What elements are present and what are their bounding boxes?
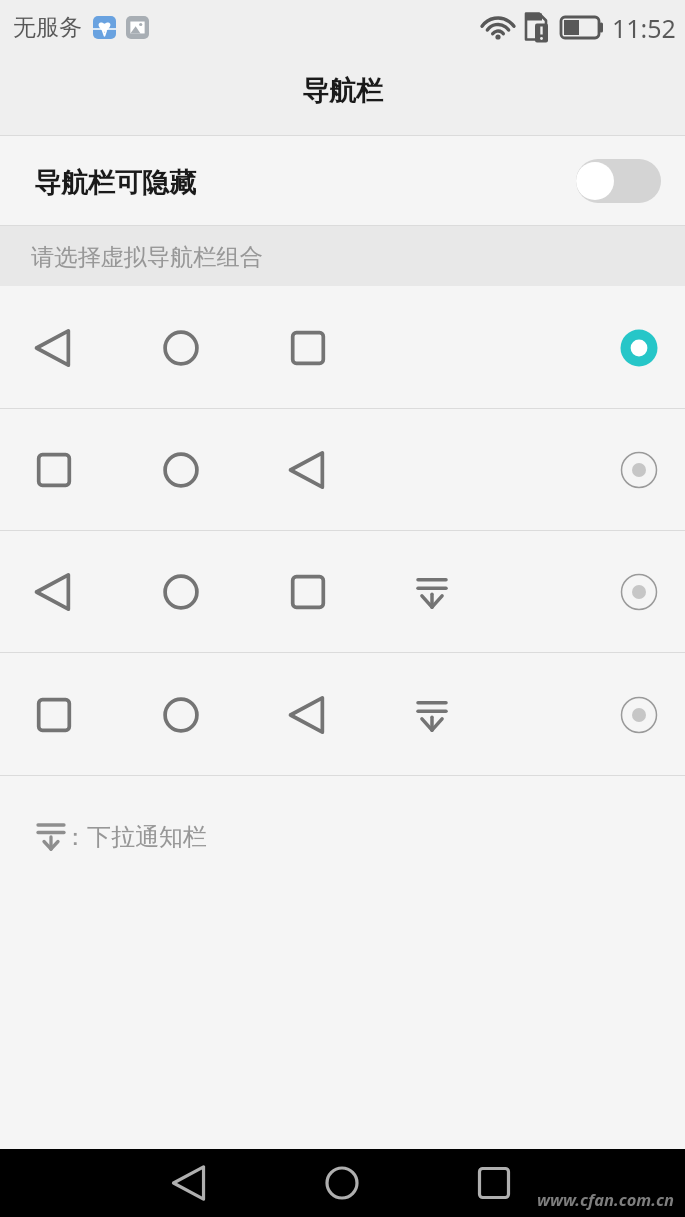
button[interactable]: Recent apps	[464, 1153, 524, 1213]
button[interactable]	[0, 409, 685, 531]
button[interactable]: Back	[160, 1153, 220, 1213]
staticText: 导航栏可隐藏	[34, 166, 196, 200]
button[interactable]: Home	[312, 1153, 372, 1213]
staticText: 导航栏	[302, 74, 383, 108]
staticText: 11:52	[612, 11, 676, 45]
button[interactable]	[0, 531, 685, 653]
staticText: ：下拉通知栏	[63, 822, 207, 852]
button[interactable]	[0, 653, 685, 776]
button[interactable]	[576, 159, 661, 203]
staticText: 请选择虚拟导航栏组合	[31, 243, 263, 272]
button[interactable]: 导航栏可隐藏	[0, 136, 685, 226]
button[interactable]	[0, 286, 685, 409]
staticText: 无服务	[13, 13, 82, 42]
staticText: www.cfan.com.cn	[537, 1188, 674, 1210]
